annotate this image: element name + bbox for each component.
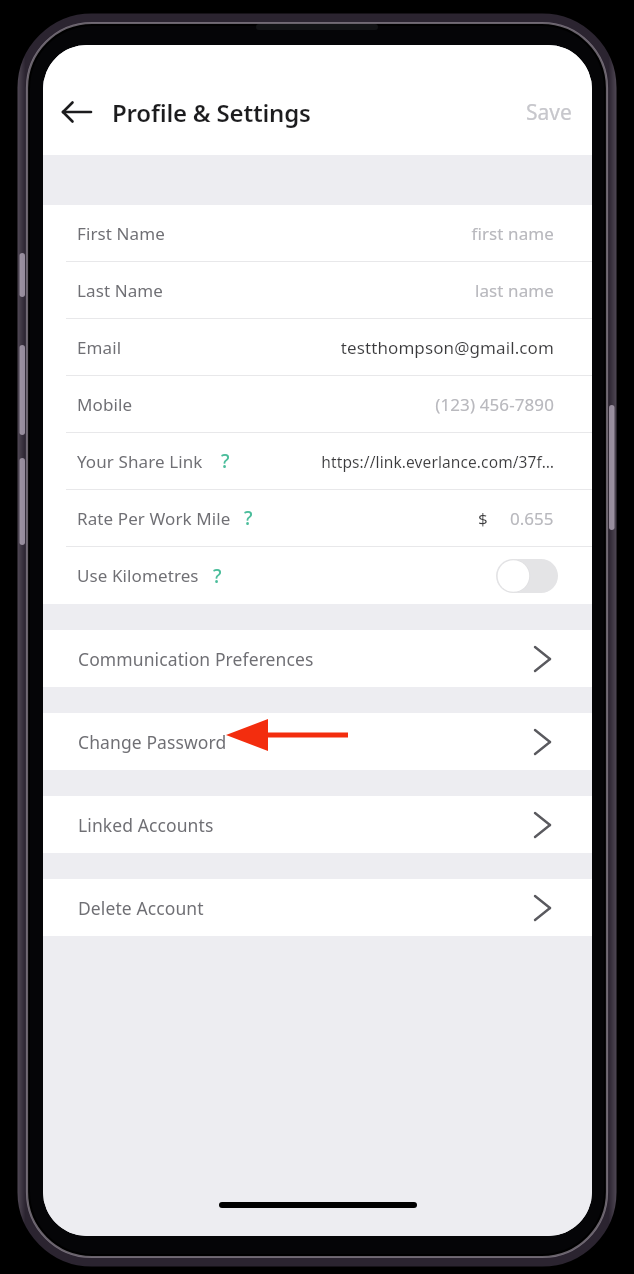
staticText: Communication Preferences: [78, 647, 314, 671]
staticText: ?: [221, 448, 230, 474]
staticText: https://link.everlance.com/37f…: [321, 451, 554, 472]
button[interactable]: Save: [520, 90, 578, 135]
staticText: 0.655: [510, 507, 554, 530]
staticText: Mobile: [77, 393, 133, 416]
staticText: ?: [213, 563, 222, 589]
staticText: testthompson@gmail.com: [340, 336, 554, 359]
button[interactable]: Mobile: [43, 376, 592, 432]
staticText: ?: [244, 505, 253, 531]
staticText: $: [478, 507, 488, 530]
staticText: Save: [526, 98, 572, 127]
staticText: Change Password: [78, 730, 227, 754]
staticText: last name: [474, 279, 554, 302]
staticText: (123) 456-7890: [435, 393, 554, 416]
staticText: First Name: [77, 222, 165, 245]
button[interactable]: Use kilometres toggle, off: [496, 559, 558, 593]
button[interactable]: Linked Accounts: [43, 796, 592, 853]
button[interactable]: Communication Preferences: [43, 630, 592, 687]
button[interactable]: Delete Account: [43, 879, 592, 936]
staticText: Delete Account: [78, 896, 204, 920]
button[interactable]: Rate Per Work Mile: [43, 490, 592, 546]
button[interactable]: Change Password: [43, 713, 592, 770]
staticText: Rate Per Work Mile: [77, 507, 231, 530]
button[interactable]: Last Name: [43, 262, 592, 318]
button[interactable]: First Name: [43, 205, 592, 261]
button[interactable]: Back: [50, 85, 104, 139]
button[interactable]: Your Share Link: [43, 433, 592, 489]
button[interactable]: Email: [43, 319, 592, 375]
staticText: first name: [471, 222, 554, 245]
staticText: Linked Accounts: [78, 813, 214, 837]
staticText: Email: [77, 336, 122, 359]
staticText: Last Name: [77, 279, 163, 302]
staticText: Use Kilometres: [77, 564, 199, 587]
staticText: Profile & Settings: [112, 96, 311, 129]
staticText: Your Share Link: [77, 450, 203, 473]
